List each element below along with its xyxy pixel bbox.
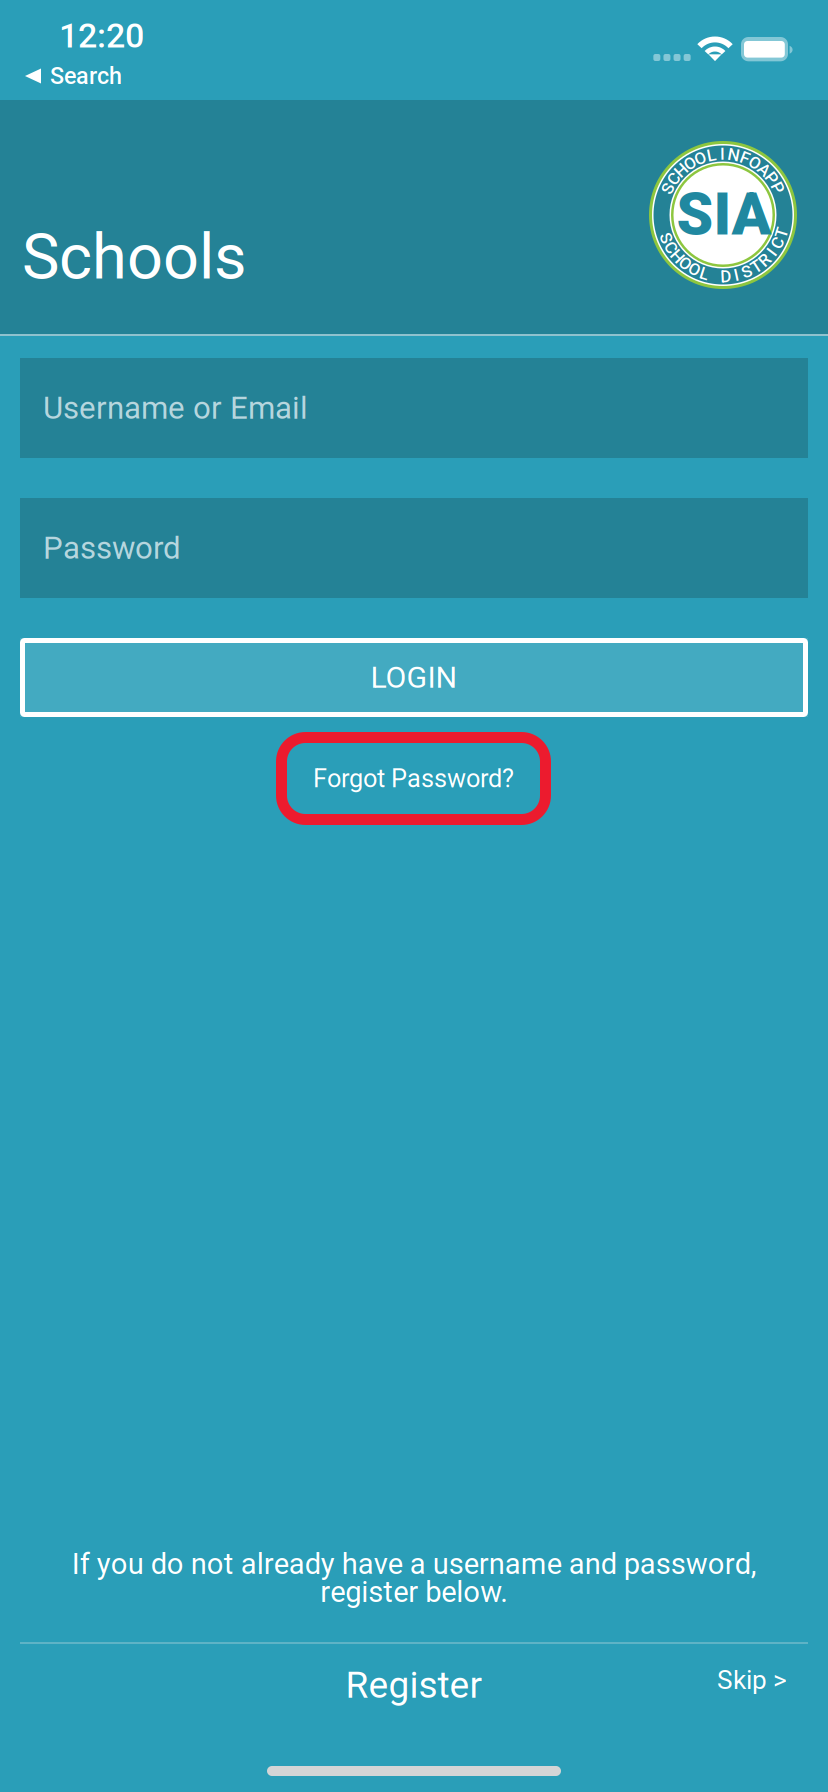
staticText: O [688, 260, 700, 279]
button[interactable]: Username or Email [20, 358, 808, 458]
staticText: L [707, 145, 716, 165]
staticText: I [720, 144, 725, 164]
staticText: I [769, 242, 774, 262]
staticText: S [663, 179, 673, 199]
staticText: H [675, 161, 687, 180]
staticText: O [694, 148, 706, 168]
staticText: C [668, 169, 679, 189]
staticText: T [751, 257, 761, 277]
staticText: S [742, 262, 752, 282]
staticText: 12:20 [59, 16, 144, 56]
staticText: Username or Email [43, 390, 308, 426]
staticText: P [766, 168, 777, 188]
staticText: Skip > [717, 1665, 787, 1695]
staticText: F [740, 148, 749, 168]
staticText: C [665, 238, 676, 257]
button[interactable]: Password [20, 498, 808, 598]
button[interactable]: Forgot Password? [276, 732, 551, 825]
staticText: I [734, 265, 739, 285]
staticText: T [777, 223, 787, 243]
staticText: P [772, 178, 783, 198]
staticText: O [679, 254, 691, 273]
staticText: Password [43, 530, 181, 566]
staticText: A [758, 160, 769, 180]
staticText: S [661, 228, 671, 248]
staticText: SIA [676, 180, 771, 249]
staticText: N [728, 145, 740, 165]
staticText: Search [50, 62, 122, 90]
button[interactable]: Skip > [697, 1638, 807, 1722]
staticText: LOGIN [370, 660, 457, 695]
staticText: O [684, 154, 696, 173]
staticText: R [759, 250, 770, 270]
staticText: L [700, 264, 709, 283]
staticText [713, 266, 717, 286]
staticText: Forgot Password? [313, 764, 514, 793]
staticText: Schools [22, 220, 247, 294]
button[interactable]: LOGIN [20, 638, 808, 717]
staticText: Register [345, 1663, 482, 1707]
button[interactable]: Search [25, 58, 325, 94]
staticText: H [671, 246, 683, 266]
staticText: D [720, 267, 731, 286]
button[interactable]: Register [254, 1643, 574, 1727]
staticText: If you do not already have a username an… [71, 1547, 756, 1609]
staticText: O [749, 153, 761, 173]
staticText: C [772, 233, 783, 253]
